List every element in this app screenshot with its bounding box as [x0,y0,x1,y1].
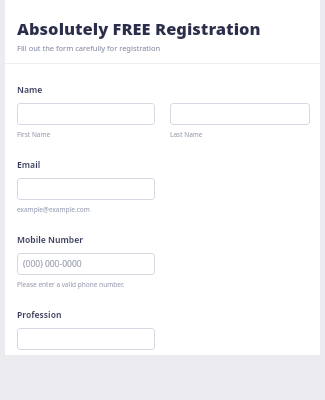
staticText: Please enter a valid phone number. [17,280,125,289]
staticText: example@example.com [17,205,90,214]
staticText: Fill out the form carefully for registra… [17,43,161,53]
button[interactable] [170,103,310,125]
button[interactable] [17,178,155,200]
button[interactable]: (000) 000-0000 [17,253,155,275]
staticText: Email [17,159,41,171]
button[interactable] [17,103,155,125]
staticText: Mobile Number [17,234,84,246]
staticText: Profession [17,309,62,321]
staticText: Name [17,84,43,96]
button[interactable] [17,328,155,350]
staticText: Absolutely FREE Registration [17,17,261,39]
staticText: (000) 000-0000 [23,258,82,270]
staticText: Last Name [170,130,203,139]
staticText: First Name [17,130,51,139]
